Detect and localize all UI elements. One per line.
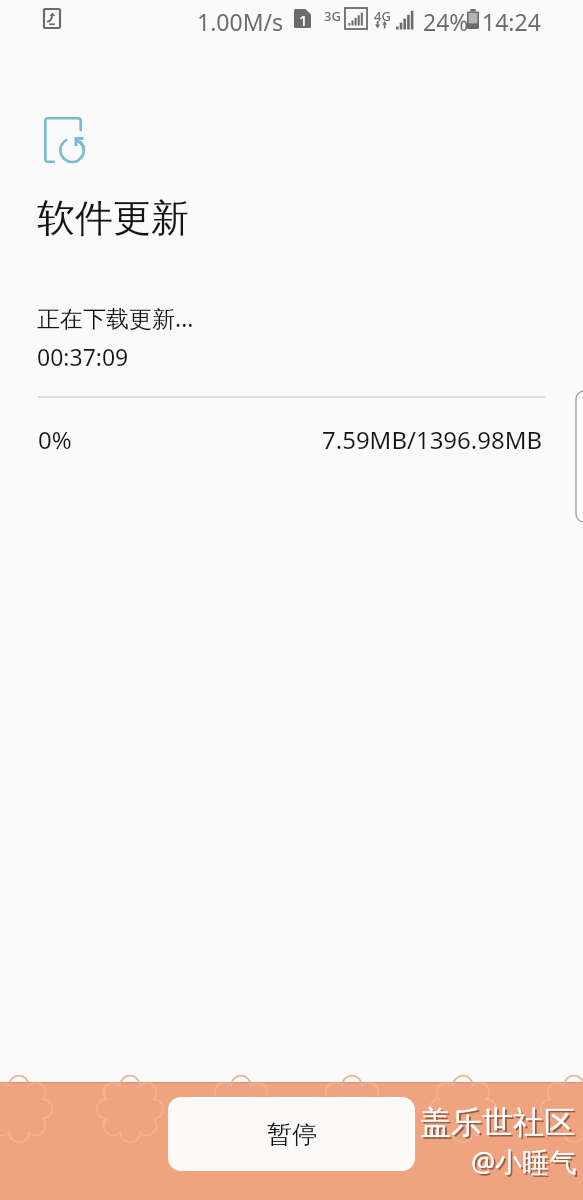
staticText: 暂停 [267, 1119, 317, 1150]
staticText: 1 [299, 10, 308, 30]
staticText: 14:24 [482, 6, 541, 37]
staticText: 软件更新 [37, 194, 189, 242]
button[interactable]: 暂停 [168, 1097, 415, 1171]
staticText: 4G [374, 7, 391, 25]
staticText: 3G [324, 7, 341, 25]
staticText: 盖乐世社区 [422, 1105, 577, 1144]
staticText: 正在下载更新... [37, 302, 194, 333]
staticText: 7.59MB/1396.98MB [322, 423, 543, 456]
staticText: 盖乐世社区 [420, 1103, 575, 1142]
other: Screen recording [44, 9, 60, 28]
staticText: 1.00M/s [197, 6, 284, 37]
staticText: @小睡气 [471, 1143, 577, 1180]
staticText: @小睡气 [473, 1145, 579, 1182]
staticText: 0% [38, 423, 72, 456]
staticText: 00:37:09 [37, 341, 129, 372]
staticText: 24% [423, 6, 469, 37]
